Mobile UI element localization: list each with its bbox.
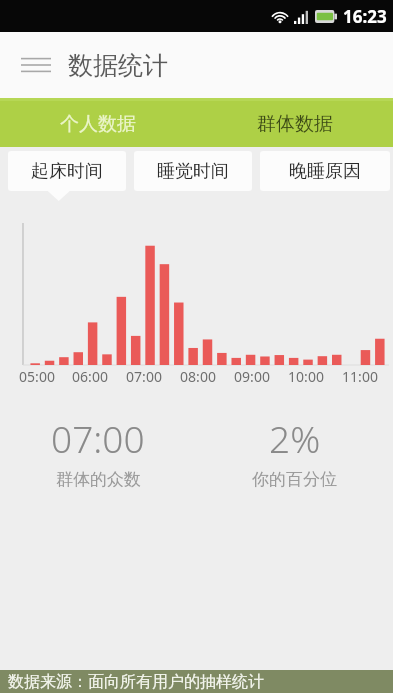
- staticText: 睡觉时间: [157, 160, 229, 183]
- staticText: 05:00: [19, 367, 55, 386]
- staticText: 晚睡原因: [289, 160, 361, 183]
- staticText: 群体的众数: [56, 469, 141, 490]
- button[interactable]: 起床时间: [8, 151, 126, 191]
- staticText: 数据来源：面向所有用户的抽样统计: [8, 672, 264, 692]
- staticText: 10:00: [288, 367, 324, 386]
- staticText: 06:00: [72, 367, 108, 386]
- staticText: 起床时间: [31, 160, 103, 183]
- staticText: 数据统计: [68, 50, 168, 81]
- button[interactable]: 数据来源：面向所有用户的抽样统计: [0, 670, 393, 693]
- button[interactable]: Menu: [14, 43, 58, 87]
- staticText: 08:00: [180, 367, 216, 386]
- button[interactable]: 晚睡原因: [260, 151, 390, 191]
- staticText: 群体数据: [257, 112, 333, 136]
- button[interactable]: 睡觉时间: [134, 151, 252, 191]
- button[interactable]: 群体数据: [196, 101, 393, 147]
- staticText: 个人数据: [60, 112, 136, 136]
- staticText: 07:00: [126, 367, 162, 386]
- staticText: 16:23: [343, 5, 387, 28]
- staticText: 07:00: [51, 413, 145, 463]
- staticText: 2%: [269, 413, 321, 463]
- staticText: 09:00: [234, 367, 270, 386]
- staticText: 11:00: [342, 367, 378, 386]
- staticText: 你的百分位: [252, 469, 337, 490]
- button[interactable]: 个人数据: [0, 101, 196, 147]
